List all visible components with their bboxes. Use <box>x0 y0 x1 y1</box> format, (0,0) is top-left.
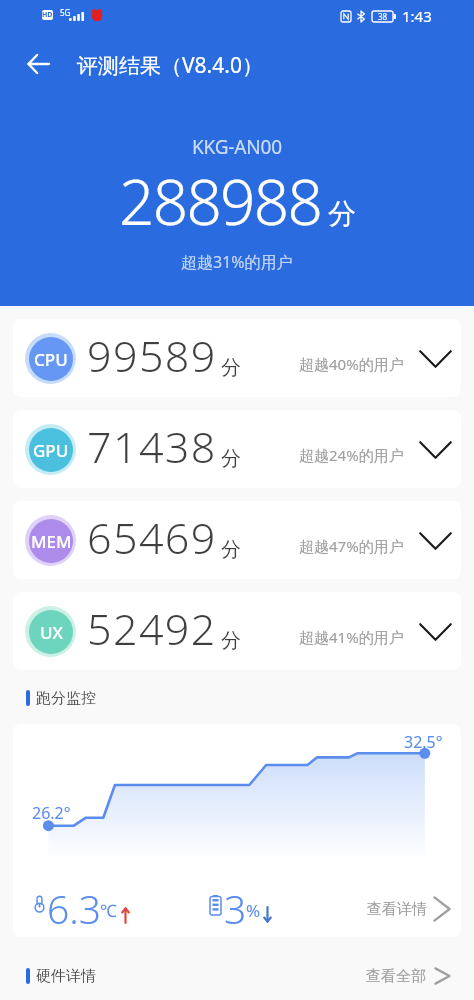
button[interactable]: MEM <box>13 501 461 579</box>
staticText: 超越31%的用户 <box>181 251 293 273</box>
staticText: 38 <box>378 11 388 22</box>
staticText: 分 <box>221 355 241 380</box>
staticText: MEM <box>31 530 72 553</box>
staticText: 超越24%的用户 <box>299 445 404 465</box>
staticText: 超越47%的用户 <box>299 536 404 556</box>
staticText: CPU <box>34 348 68 371</box>
button[interactable]: GPU <box>13 410 461 488</box>
staticText: 3 <box>224 882 247 935</box>
staticText: 52492 <box>87 599 217 658</box>
button[interactable]: CPU <box>13 319 461 397</box>
staticText: 1:43 <box>402 6 432 26</box>
staticText: KKG-AN00 <box>192 134 282 160</box>
staticText: 分 <box>221 446 241 471</box>
staticText: 超越40%的用户 <box>299 354 404 374</box>
staticText: 查看全部 <box>366 967 426 985</box>
staticText: 5G <box>60 7 71 18</box>
staticText: 跑分监控 <box>36 689 96 707</box>
button[interactable]: 查看全部 <box>366 967 451 985</box>
button[interactable]: UX <box>13 592 461 670</box>
staticText: 288988 <box>119 159 322 243</box>
staticText: 硬件详情 <box>36 967 96 985</box>
staticText: % <box>246 899 261 922</box>
staticText: UX <box>40 621 63 644</box>
staticText: HD <box>42 10 53 20</box>
button[interactable]: Back <box>16 42 60 86</box>
staticText: 99589 <box>87 326 217 385</box>
staticText: 分 <box>221 537 241 562</box>
staticText: 分 <box>221 628 241 653</box>
staticText: 32.5° <box>404 731 443 753</box>
staticText: 26.2° <box>32 802 71 824</box>
staticText: 6.3 <box>47 882 102 935</box>
staticText: 分 <box>328 196 356 231</box>
staticText: GPU <box>33 439 69 462</box>
button[interactable]: 查看详情 <box>367 896 451 922</box>
staticText: ℃ <box>100 899 117 922</box>
staticText: 65469 <box>87 508 217 567</box>
staticText: 超越41%的用户 <box>299 627 404 647</box>
staticText: 71438 <box>87 417 217 476</box>
staticText: 查看详情 <box>367 900 427 919</box>
staticText: 评测结果（V8.4.0） <box>77 51 263 80</box>
